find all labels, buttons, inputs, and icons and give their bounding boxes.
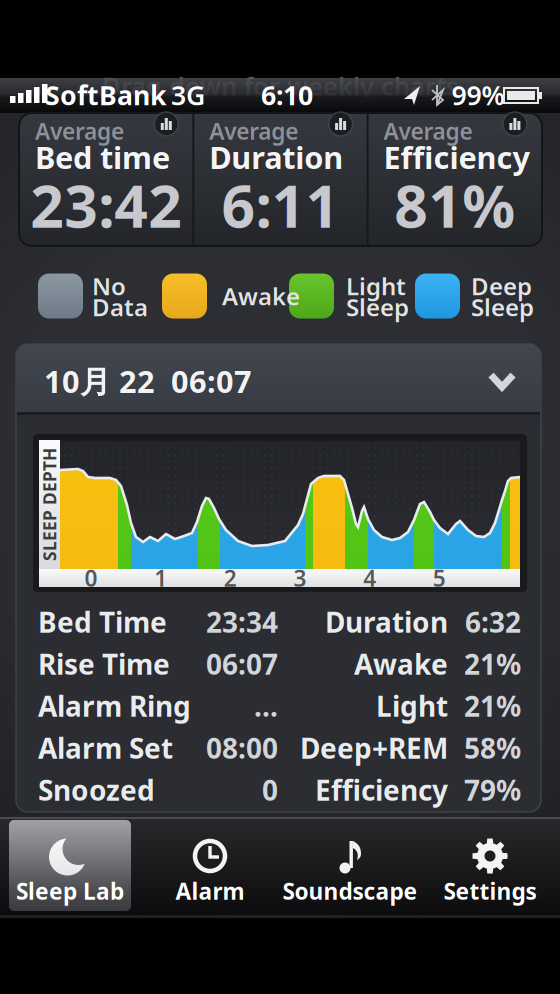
button[interactable]: Average: [193, 113, 368, 246]
button[interactable]: Average: [368, 113, 542, 246]
staticText: 6:10: [261, 77, 313, 113]
staticText: 10月 22 06:07: [44, 361, 252, 401]
staticText: No: [92, 270, 126, 302]
staticText: 58%: [464, 729, 521, 767]
staticText: Settings: [443, 876, 536, 906]
staticText: Efficiency: [384, 137, 531, 177]
staticText: 06:07: [206, 645, 278, 683]
staticText: 6:32: [465, 603, 521, 641]
staticText: Awake: [222, 280, 300, 312]
staticText: Rise Time: [38, 645, 170, 683]
staticText: Bed time: [35, 137, 170, 177]
staticText: Bed Time: [38, 603, 167, 641]
staticText: Sleep: [471, 291, 534, 323]
staticText: ...: [254, 687, 278, 725]
staticText: 81%: [394, 166, 515, 244]
staticText: Data: [92, 291, 148, 323]
staticText: 08:00: [206, 729, 278, 767]
button[interactable]: Alarm: [145, 820, 275, 911]
staticText: Alarm: [175, 876, 244, 906]
button[interactable]: 10月 22 06:07: [16, 344, 541, 412]
staticText: 79%: [464, 771, 521, 809]
staticText: Average: [35, 116, 124, 146]
staticText: Soundscape: [282, 876, 417, 906]
staticText: Sleep Lab: [16, 876, 124, 906]
button[interactable]: Soundscape: [285, 820, 415, 911]
staticText: Drag down for weekly charts: [102, 69, 458, 103]
staticText: Duration: [209, 137, 343, 177]
staticText: Deep: [471, 270, 532, 302]
staticText: Light: [346, 270, 406, 302]
staticText: 1: [154, 563, 167, 593]
staticText: Awake: [354, 645, 448, 683]
button[interactable]: Average: [19, 113, 193, 246]
staticText: Efficiency: [315, 771, 448, 809]
staticText: 4: [363, 563, 376, 593]
staticText: 3: [293, 563, 306, 593]
staticText: 21%: [464, 687, 521, 725]
button[interactable]: Settings: [425, 820, 555, 911]
staticText: 5: [433, 563, 446, 593]
staticText: Alarm Set: [38, 729, 173, 767]
staticText: 23:42: [30, 166, 182, 244]
staticText: 3G: [171, 77, 205, 113]
staticText: 21%: [464, 645, 521, 683]
staticText: Snoozed: [38, 771, 155, 809]
button[interactable]: Sleep Lab: [9, 820, 131, 911]
staticText: 2: [224, 563, 237, 593]
staticText: 99%: [451, 77, 504, 113]
staticText: Alarm Ring: [38, 687, 191, 725]
staticText: SLEEP DEPTH: [0, 493, 106, 516]
staticText: Duration: [325, 603, 448, 641]
staticText: Deep+REM: [300, 729, 448, 767]
staticText: 0: [84, 563, 97, 593]
staticText: 6:11: [221, 166, 339, 244]
staticText: 23:34: [206, 603, 278, 641]
staticText: Sleep: [346, 291, 409, 323]
staticText: SoftBank: [45, 77, 167, 113]
staticText: Light: [376, 687, 448, 725]
staticText: Average: [384, 116, 473, 146]
staticText: Average: [209, 116, 298, 146]
staticText: 0: [262, 771, 278, 809]
